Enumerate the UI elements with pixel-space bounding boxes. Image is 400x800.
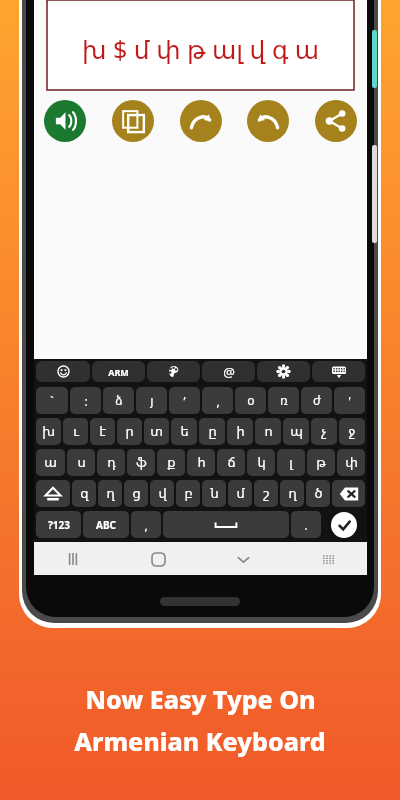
button[interactable]: օ bbox=[235, 387, 266, 414]
button[interactable]: ի bbox=[227, 418, 253, 445]
button[interactable]: դ bbox=[97, 449, 125, 476]
button[interactable]: վ bbox=[150, 480, 174, 507]
staticText: ' bbox=[348, 393, 351, 409]
staticText: ’ bbox=[183, 393, 186, 409]
button[interactable]: լ bbox=[277, 449, 305, 476]
button[interactable]: ր bbox=[117, 418, 142, 445]
button[interactable]: Speak bbox=[44, 100, 86, 142]
staticText: շ bbox=[263, 486, 270, 501]
button[interactable]: Theme bbox=[147, 361, 200, 382]
button[interactable]: ' bbox=[334, 387, 365, 414]
staticText: ց bbox=[132, 486, 141, 501]
button[interactable]: Comma bbox=[131, 511, 161, 538]
staticText: կ bbox=[257, 455, 266, 470]
staticText: ջ bbox=[348, 424, 356, 439]
staticText: ?123 bbox=[48, 518, 70, 532]
button[interactable]: փ bbox=[337, 449, 365, 476]
button[interactable]: չ bbox=[311, 418, 337, 445]
staticText: , bbox=[144, 517, 148, 533]
button[interactable]: ո bbox=[255, 418, 281, 445]
button[interactable]: ժ bbox=[301, 387, 332, 414]
button[interactable]: Enter bbox=[331, 512, 357, 538]
button[interactable]: ’ bbox=[169, 387, 200, 414]
staticText: ր bbox=[125, 424, 134, 439]
button[interactable]: Shift bbox=[36, 480, 70, 507]
button[interactable]: Undo bbox=[247, 100, 289, 142]
button[interactable]: Space bbox=[163, 511, 289, 538]
staticText: ս bbox=[77, 455, 86, 470]
button[interactable]: , bbox=[202, 387, 233, 414]
staticText: խ bbox=[42, 424, 55, 439]
button[interactable]: Back bbox=[230, 546, 256, 572]
staticText: . bbox=[304, 517, 308, 533]
staticText: խ $ մ փ թ ալ վ գ ա bbox=[82, 32, 320, 66]
button[interactable]: Keyboard switcher bbox=[315, 546, 341, 572]
button[interactable]: ա bbox=[36, 449, 65, 476]
button[interactable]: ե bbox=[171, 418, 197, 445]
button[interactable]: Hide keyboard bbox=[312, 361, 365, 382]
button[interactable]: ճ bbox=[217, 449, 245, 476]
staticText: ի bbox=[236, 424, 245, 439]
staticText: ` bbox=[50, 393, 54, 409]
button[interactable]: թ bbox=[307, 449, 335, 476]
staticText: թ bbox=[316, 455, 326, 470]
button[interactable]: ն bbox=[202, 480, 226, 507]
button[interactable]: Emoji bbox=[36, 361, 90, 382]
button[interactable]: ը bbox=[199, 418, 225, 445]
button[interactable]: At bbox=[202, 361, 255, 382]
staticText: ABC bbox=[96, 518, 116, 532]
staticText: չ bbox=[321, 424, 327, 439]
staticText: ծ bbox=[314, 486, 323, 501]
staticText: ճ bbox=[227, 455, 236, 470]
button[interactable]: Redo bbox=[180, 100, 222, 142]
button[interactable]: ձ bbox=[103, 387, 134, 414]
button[interactable]: Language bbox=[92, 361, 145, 382]
button[interactable]: ` bbox=[36, 387, 68, 414]
button[interactable]: պ bbox=[283, 418, 309, 445]
staticText: : bbox=[84, 393, 88, 409]
button[interactable]: ց bbox=[124, 480, 148, 507]
button[interactable]: է bbox=[90, 418, 115, 445]
button[interactable]: մ bbox=[228, 480, 252, 507]
staticText: ք bbox=[167, 455, 176, 470]
button[interactable]: խ $ մ փ թ ալ վ գ ա bbox=[47, 0, 354, 90]
button[interactable]: ղ bbox=[98, 480, 122, 507]
button[interactable]: բ bbox=[176, 480, 200, 507]
button[interactable]: խ bbox=[36, 418, 61, 445]
button[interactable]: Numbers bbox=[36, 511, 81, 538]
button[interactable]: ծ bbox=[306, 480, 330, 507]
button[interactable]: : bbox=[70, 387, 101, 414]
button[interactable]: Period bbox=[291, 511, 321, 538]
button[interactable]: ղ bbox=[280, 480, 304, 507]
button[interactable]: Home bbox=[145, 546, 171, 572]
staticText: Now Easy Type On bbox=[85, 682, 316, 716]
button[interactable]: Copy bbox=[112, 100, 154, 142]
button[interactable]: Recents bbox=[60, 546, 86, 572]
staticText: ա bbox=[44, 455, 57, 470]
button[interactable]: ռ bbox=[268, 387, 299, 414]
staticText: փ bbox=[345, 455, 358, 470]
button[interactable]: ք bbox=[157, 449, 185, 476]
staticText: ո bbox=[264, 424, 273, 439]
staticText: ARM bbox=[108, 366, 129, 378]
button[interactable]: ABC bbox=[83, 511, 129, 538]
button[interactable]: ս bbox=[67, 449, 95, 476]
button[interactable]: ջ bbox=[339, 418, 365, 445]
button[interactable]: հ bbox=[187, 449, 215, 476]
staticText: է bbox=[99, 424, 106, 439]
staticText: ը bbox=[208, 424, 217, 439]
staticText: ժ bbox=[313, 394, 321, 408]
button[interactable]: ֆ bbox=[127, 449, 155, 476]
button[interactable]: Share bbox=[315, 100, 357, 142]
button[interactable]: ւ bbox=[63, 418, 88, 445]
button[interactable]: Backspace bbox=[332, 480, 365, 507]
button[interactable]: տ bbox=[144, 418, 169, 445]
button[interactable]: շ bbox=[254, 480, 278, 507]
button[interactable]: զ bbox=[72, 480, 96, 507]
button[interactable]: յ bbox=[136, 387, 167, 414]
staticText: մ bbox=[236, 486, 245, 501]
button[interactable]: Settings bbox=[257, 361, 310, 382]
button[interactable]: կ bbox=[247, 449, 275, 476]
staticText: բ bbox=[184, 486, 193, 501]
staticText: դ bbox=[107, 455, 116, 470]
